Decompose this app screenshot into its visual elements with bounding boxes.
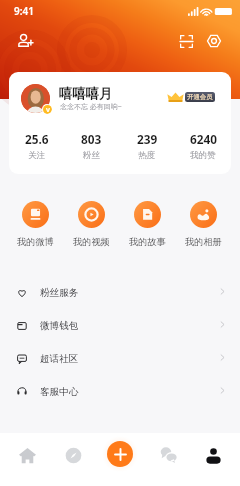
button[interactable]: 微博钱包 xyxy=(0,309,240,342)
staticText: 粉丝服务 xyxy=(40,287,79,299)
staticText: 关注 xyxy=(28,150,46,161)
staticText: 我的赞 xyxy=(190,150,216,161)
button[interactable]: 客服中心 xyxy=(0,375,240,408)
staticText: 微博钱包 xyxy=(40,320,79,332)
button[interactable]: Profile xyxy=(189,433,237,478)
button[interactable]: Post xyxy=(107,441,133,467)
staticText: 念念不忘 必有回响~ xyxy=(60,102,122,112)
staticText: 我的相册 xyxy=(185,236,222,248)
button[interactable]: 粉丝服务 xyxy=(0,276,240,309)
staticText: V xyxy=(46,106,50,114)
button[interactable]: 我的微博 xyxy=(8,201,63,248)
button[interactable]: 开通会员 xyxy=(167,91,215,103)
button[interactable]: 803 xyxy=(64,131,119,161)
button[interactable]: Settings xyxy=(203,30,225,52)
staticText: 粉丝 xyxy=(83,150,101,161)
staticText: 客服中心 xyxy=(40,386,79,398)
button[interactable]: 我的相册 xyxy=(175,201,231,248)
button[interactable]: 我的视频 xyxy=(63,201,119,248)
button[interactable]: Scan xyxy=(175,30,197,52)
staticText: 嘻嘻嘻月 xyxy=(59,85,113,102)
staticText: 热度 xyxy=(138,150,156,161)
button[interactable]: 6240 xyxy=(175,131,231,161)
staticText: 我的故事 xyxy=(129,236,166,248)
button[interactable]: 超话社区 xyxy=(0,342,240,375)
button[interactable]: 我的故事 xyxy=(119,201,175,248)
staticText: 239 xyxy=(137,131,158,147)
button[interactable]: Messages xyxy=(144,433,192,478)
button[interactable]: 25.6 xyxy=(9,131,64,161)
staticText: 803 xyxy=(81,131,102,147)
staticText: 超话社区 xyxy=(40,353,79,365)
staticText: 我的微博 xyxy=(17,236,54,248)
staticText: 25.6 xyxy=(25,131,49,147)
staticText: 9:41 xyxy=(14,4,34,18)
button[interactable]: Home xyxy=(3,433,51,478)
button[interactable]: Add friend xyxy=(14,30,36,52)
button[interactable]: 239 xyxy=(119,131,175,161)
staticText: 我的视频 xyxy=(73,236,110,248)
staticText: 开通会员 xyxy=(187,93,213,101)
button[interactable]: Discover xyxy=(49,433,97,478)
staticText: 6240 xyxy=(190,131,217,147)
